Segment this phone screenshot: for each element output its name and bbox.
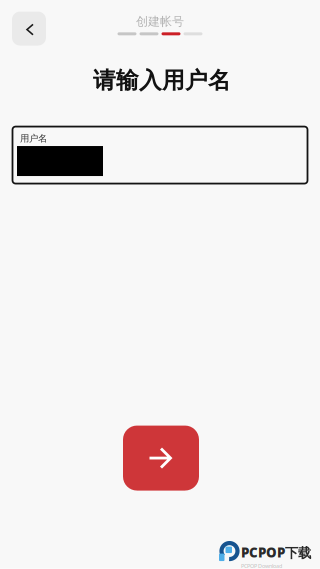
button[interactable]: Next xyxy=(123,426,199,491)
staticText: PCPOP Download xyxy=(241,562,282,569)
staticText: PCPOP下载 xyxy=(241,544,311,561)
staticText: 请输入用户名 xyxy=(93,67,231,94)
staticText: 用户名 xyxy=(20,133,47,144)
button[interactable]: Back xyxy=(12,12,46,46)
button[interactable]: 用户名 xyxy=(12,127,307,184)
staticText: 创建帐号 xyxy=(136,14,184,29)
